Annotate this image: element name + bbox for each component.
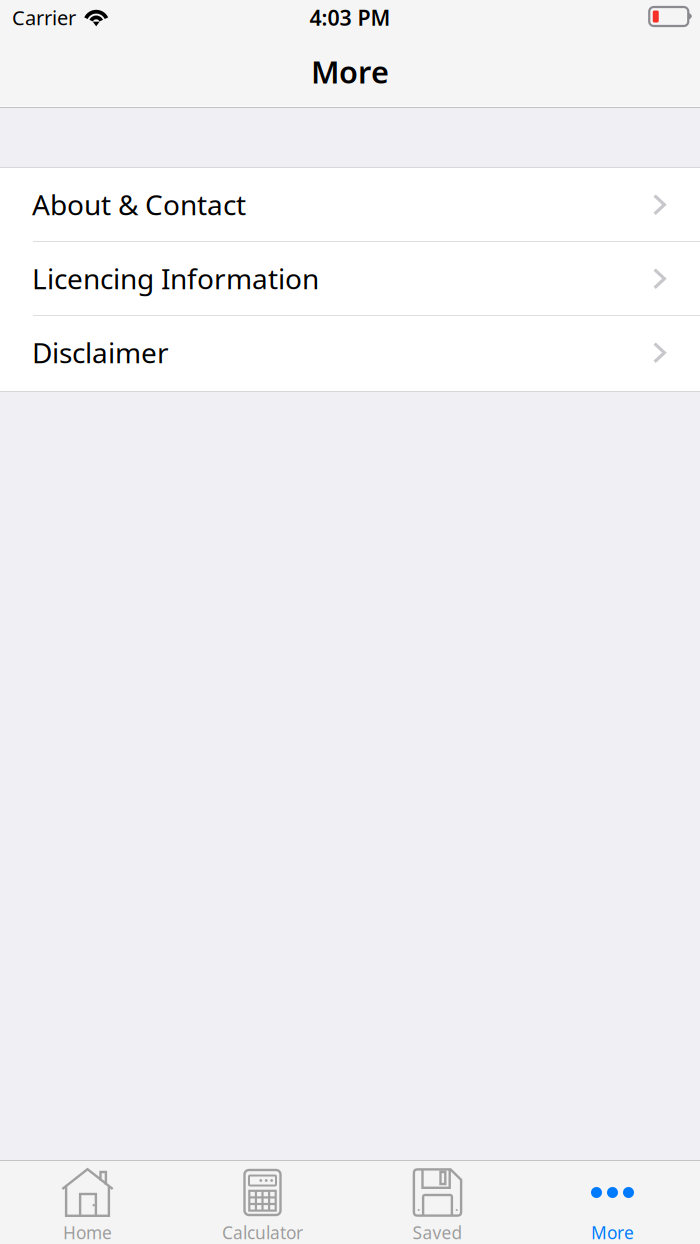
button[interactable]: Saved xyxy=(350,1160,525,1244)
button[interactable]: Disclaimer xyxy=(0,316,700,389)
staticText: Saved xyxy=(412,1221,462,1244)
button[interactable]: More xyxy=(525,1160,700,1244)
staticText: About & Contact xyxy=(32,186,246,223)
staticText: Licencing Information xyxy=(32,260,319,297)
staticText: Home xyxy=(63,1221,112,1244)
button[interactable]: Calculator xyxy=(175,1160,350,1244)
button[interactable]: Licencing Information xyxy=(0,242,700,315)
staticText: Carrier xyxy=(12,4,76,31)
staticText: 4:03 PM xyxy=(309,3,390,32)
staticText: Disclaimer xyxy=(32,334,169,371)
button[interactable]: About & Contact xyxy=(0,168,700,241)
staticText: Calculator xyxy=(222,1221,303,1244)
staticText: More xyxy=(311,51,389,92)
button[interactable]: Home xyxy=(0,1160,175,1244)
staticText: More xyxy=(591,1221,634,1244)
